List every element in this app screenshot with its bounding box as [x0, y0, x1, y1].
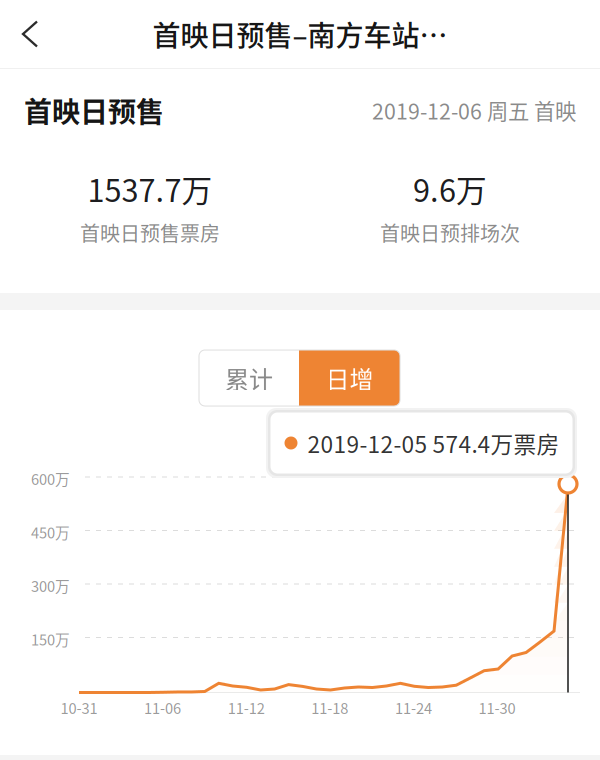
staticText: 1537.7万 [87, 166, 212, 211]
staticText: 日增 [325, 361, 373, 395]
staticText: 450万 [31, 521, 70, 543]
staticText: 9.6万 [413, 166, 487, 211]
staticText: 11-06 [144, 697, 181, 718]
button[interactable]: 日增 [299, 350, 400, 406]
staticText: 150万 [31, 628, 70, 650]
staticText: 11-18 [311, 697, 348, 718]
staticText: 首映日预售票房 [80, 218, 220, 247]
staticText: 10-31 [60, 697, 97, 718]
staticText: 11-30 [478, 697, 515, 718]
staticText: 11-12 [228, 697, 265, 718]
staticText: 300万 [31, 575, 70, 596]
staticText: 首映日预售 [24, 90, 164, 130]
staticText: 首映日预售–南方车站… [152, 14, 447, 54]
staticText: 11-24 [395, 697, 432, 718]
button[interactable]: 累计 [199, 350, 299, 406]
button[interactable]: Back [0, 0, 66, 67]
staticText: 首映日预排场次 [380, 218, 520, 247]
staticText: 累计 [225, 361, 273, 395]
staticText: 600万 [31, 468, 70, 489]
staticText: 2019-12-06 周五 首映 [372, 95, 576, 126]
staticText: 2019-12-05 574.4万票房 [307, 427, 559, 459]
